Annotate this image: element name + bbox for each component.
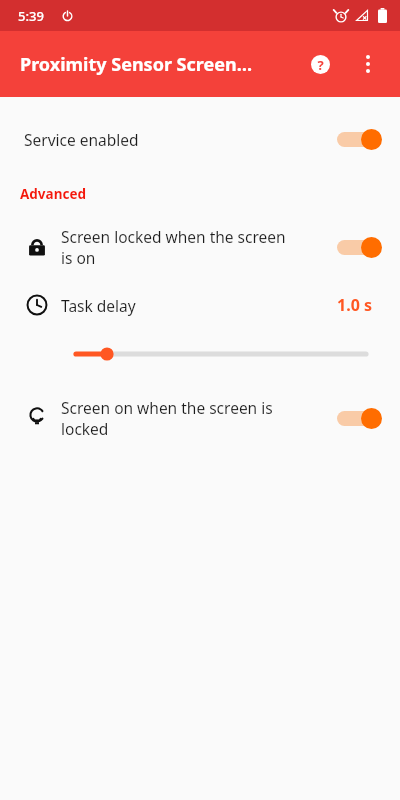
staticText: 5:39 xyxy=(18,7,44,25)
button[interactable] xyxy=(330,404,382,432)
staticText: Proximity Sensor Screen… xyxy=(20,52,253,77)
staticText: Task delay xyxy=(61,295,136,316)
staticText: Advanced xyxy=(20,185,87,203)
button[interactable]: Service enabled xyxy=(0,114,400,164)
button[interactable] xyxy=(330,125,382,153)
button[interactable]: Task delay slider xyxy=(0,340,400,368)
staticText: is on xyxy=(61,247,96,268)
button[interactable]: Task delay xyxy=(0,284,400,326)
staticText: ? xyxy=(317,56,324,74)
button[interactable]: Screen on when the screen is xyxy=(0,390,400,446)
staticText: Screen locked when the screen xyxy=(61,226,286,247)
button[interactable] xyxy=(330,233,382,261)
staticText: Screen on when the screen is xyxy=(61,397,273,418)
button[interactable]: Help xyxy=(296,40,344,88)
staticText: Service enabled xyxy=(24,129,139,150)
button[interactable]: Screen locked when the screen xyxy=(0,219,400,275)
staticText: 1.0 s xyxy=(337,294,372,316)
staticText: locked xyxy=(61,418,109,439)
button[interactable]: More options xyxy=(344,40,392,88)
